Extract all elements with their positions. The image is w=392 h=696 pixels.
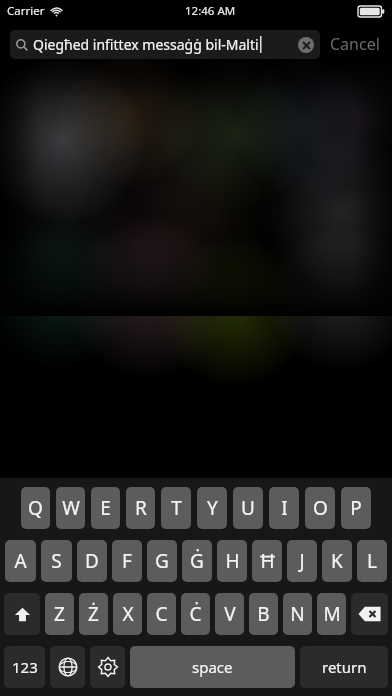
- button[interactable]: H: [217, 540, 247, 582]
- button[interactable]: Ż: [79, 593, 108, 635]
- staticText: T: [171, 495, 182, 521]
- button[interactable]: O: [305, 487, 335, 529]
- staticText: S: [51, 548, 62, 574]
- button[interactable]: Shift: [4, 593, 40, 635]
- button[interactable]: P: [341, 487, 371, 529]
- button[interactable]: Backspace: [351, 593, 388, 635]
- button[interactable]: L: [357, 540, 387, 582]
- staticText: Ġ: [190, 548, 204, 574]
- button[interactable]: G: [147, 540, 177, 582]
- staticText: K: [331, 548, 343, 574]
- staticText: Qiegħed infittex messaġġ bil-Malti: [33, 35, 259, 54]
- button[interactable]: Q: [21, 487, 50, 529]
- staticText: V: [224, 601, 236, 627]
- button[interactable]: J: [287, 540, 317, 582]
- button[interactable]: Ċ: [181, 593, 210, 635]
- button[interactable]: V: [215, 593, 244, 635]
- staticText: 12:46 AM: [185, 3, 236, 19]
- staticText: M: [323, 601, 341, 627]
- staticText: Ħ: [260, 548, 275, 574]
- button[interactable]: Clear search text: [298, 37, 314, 53]
- button[interactable]: Y: [197, 487, 227, 529]
- button[interactable]: N: [283, 593, 312, 635]
- button[interactable]: I: [269, 487, 299, 529]
- staticText: 123: [12, 657, 38, 677]
- staticText: Z: [54, 601, 65, 627]
- staticText: return: [322, 657, 367, 677]
- button[interactable]: X: [113, 593, 142, 635]
- button[interactable]: return: [300, 646, 388, 688]
- staticText: E: [100, 495, 111, 521]
- staticText: U: [241, 495, 255, 521]
- staticText: Cancel: [330, 33, 380, 55]
- button[interactable]: C: [147, 593, 176, 635]
- staticText: X: [122, 601, 134, 627]
- staticText: R: [135, 495, 147, 521]
- button[interactable]: U: [233, 487, 263, 529]
- staticText: N: [290, 601, 305, 627]
- staticText: I: [281, 495, 288, 521]
- button[interactable]: Change keyboard language: [50, 646, 85, 688]
- staticText: J: [299, 548, 305, 574]
- staticText: Carrier: [7, 3, 45, 19]
- staticText: Y: [207, 495, 218, 521]
- button[interactable]: 123: [4, 646, 45, 688]
- button[interactable]: A: [5, 540, 36, 582]
- button[interactable]: space: [130, 646, 295, 688]
- staticText: D: [85, 548, 99, 574]
- button[interactable]: Cancel: [320, 27, 382, 61]
- staticText: B: [257, 601, 270, 627]
- staticText: W: [62, 495, 80, 521]
- staticText: H: [225, 548, 240, 574]
- staticText: G: [155, 548, 169, 574]
- button[interactable]: Ġ: [182, 540, 212, 582]
- button[interactable]: Keyboard settings: [90, 646, 125, 688]
- staticText: A: [14, 548, 27, 574]
- button[interactable]: M: [317, 593, 346, 635]
- staticText: Ċ: [189, 601, 202, 627]
- button[interactable]: K: [322, 540, 352, 582]
- button[interactable]: S: [41, 540, 72, 582]
- button[interactable]: E: [91, 487, 120, 529]
- staticText: Q: [28, 495, 43, 521]
- button[interactable]: Qiegħed infittex messaġġ bil-Malti: [10, 30, 320, 59]
- button[interactable]: B: [249, 593, 278, 635]
- staticText: space: [192, 657, 233, 677]
- button[interactable]: F: [112, 540, 142, 582]
- button[interactable]: Z: [45, 593, 74, 635]
- staticText: C: [155, 601, 168, 627]
- staticText: L: [367, 548, 377, 574]
- staticText: F: [122, 548, 132, 574]
- staticText: P: [350, 495, 362, 521]
- staticText: Ż: [88, 601, 99, 627]
- button[interactable]: T: [161, 487, 191, 529]
- staticText: O: [313, 495, 328, 521]
- button[interactable]: W: [56, 487, 85, 529]
- button[interactable]: D: [77, 540, 107, 582]
- button[interactable]: Ħ: [252, 540, 282, 582]
- button[interactable]: R: [126, 487, 155, 529]
